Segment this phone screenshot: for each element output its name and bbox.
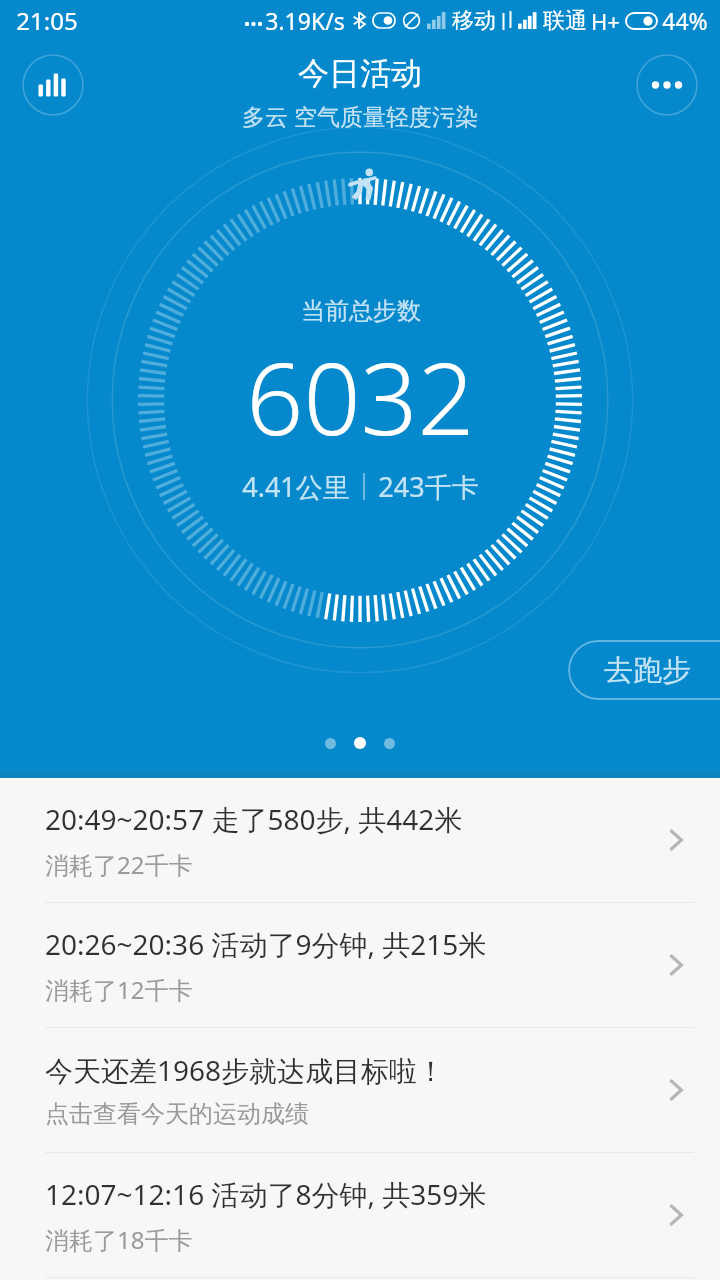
button[interactable]: 今天还差1968步就达成目标啦！: [0, 1028, 720, 1153]
staticText: 当前总步数: [301, 296, 421, 326]
staticText: 消耗了22千卡: [45, 848, 193, 881]
button[interactable]: More options: [636, 54, 698, 116]
staticText: 今天还差1968步就达成目标啦！: [45, 1051, 446, 1089]
staticText: 3.19K/s: [265, 5, 345, 36]
button[interactable]: 去跑步: [568, 640, 720, 700]
staticText: 20:26~20:36 活动了9分钟, 共215米: [45, 925, 487, 963]
staticText: 44%: [662, 5, 708, 36]
staticText: 联通: [543, 7, 587, 35]
button[interactable]: 20:26~20:36 活动了9分钟, 共215米: [0, 903, 720, 1028]
button[interactable]: 20:49~20:57 走了580步, 共442米: [0, 778, 720, 903]
staticText: 消耗了12千卡: [45, 973, 193, 1006]
staticText: 6032: [246, 328, 475, 464]
staticText: 去跑步: [604, 652, 691, 689]
button[interactable]: 12:07~12:16 活动了8分钟, 共359米: [0, 1153, 720, 1278]
staticText: 20:49~20:57 走了580步, 共442米: [45, 800, 463, 838]
staticText: 21:05: [16, 4, 78, 37]
staticText: H+: [591, 6, 620, 36]
staticText: 4.41公里: [242, 468, 350, 505]
staticText: 点击查看今天的运动成绩: [45, 1099, 309, 1129]
staticText: 12:07~12:16 活动了8分钟, 共359米: [45, 1175, 487, 1213]
staticText: 今日活动: [298, 54, 422, 93]
staticText: 消耗了18千卡: [45, 1223, 193, 1256]
staticText: 移动: [452, 7, 496, 35]
staticText: 多云 空气质量轻度污染: [242, 100, 478, 131]
button[interactable]: Statistics: [22, 54, 84, 116]
staticText: 243千卡: [378, 468, 479, 505]
